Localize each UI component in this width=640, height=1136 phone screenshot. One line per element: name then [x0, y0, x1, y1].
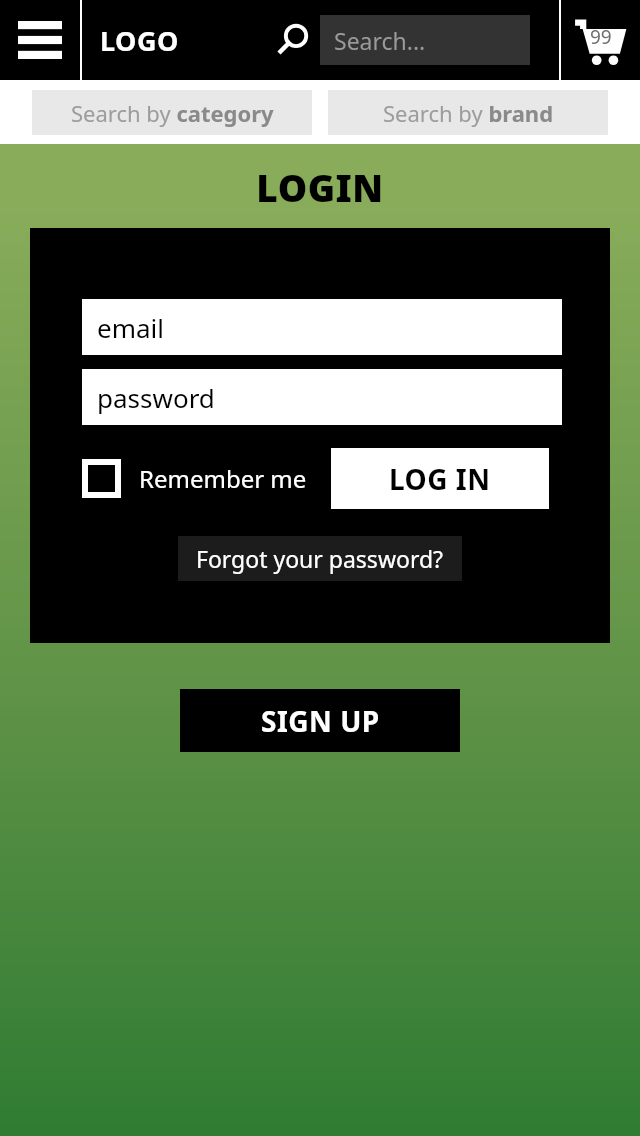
staticText: Remember me	[139, 462, 307, 495]
staticText: SIGN UP	[261, 702, 380, 740]
button[interactable]: LOG IN	[331, 448, 549, 509]
staticText: LOG IN	[389, 460, 491, 498]
button[interactable]: Search by brand	[328, 90, 608, 135]
staticText: email	[97, 310, 164, 345]
button[interactable]: Forgot your password?	[178, 536, 462, 581]
button[interactable]: password	[82, 369, 562, 425]
staticText: LOGO	[100, 22, 179, 59]
button[interactable]: SIGN UP	[180, 689, 460, 752]
button[interactable]: Search	[272, 16, 316, 64]
button[interactable]: Cart, 99 items	[561, 0, 640, 80]
button[interactable]: Menu	[0, 0, 80, 80]
button[interactable]: Remember me	[82, 459, 307, 498]
staticText: 99	[590, 24, 612, 50]
staticText: Search by brand	[383, 98, 554, 128]
staticText: Search by category	[71, 98, 274, 128]
button[interactable]: Search...	[320, 15, 530, 65]
button[interactable]: email	[82, 299, 562, 355]
button[interactable]: Search by category	[32, 90, 312, 135]
button[interactable]: LOGO	[100, 0, 179, 80]
staticText: Forgot your password?	[196, 543, 444, 574]
staticText: LOGIN	[256, 162, 384, 212]
staticText: Search...	[334, 25, 426, 56]
staticText: password	[97, 380, 215, 415]
